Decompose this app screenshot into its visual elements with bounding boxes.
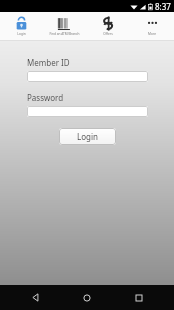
staticText: Login xyxy=(77,131,98,142)
button[interactable] xyxy=(27,106,148,117)
other: Find an ATM or Branch xyxy=(57,17,72,31)
other: Offers xyxy=(102,16,115,31)
other: Login xyxy=(15,16,28,31)
button[interactable]: Home xyxy=(70,285,104,310)
staticText: Login xyxy=(17,32,26,36)
staticText: Offers xyxy=(103,32,113,36)
button[interactable]: Find an ATM or Branch xyxy=(43,12,86,40)
button[interactable]: More xyxy=(130,12,174,40)
button[interactable]: Login xyxy=(0,12,43,40)
other: More xyxy=(145,16,160,31)
staticText: Password xyxy=(27,92,64,103)
staticText: 8:37 xyxy=(155,1,171,12)
staticText: More xyxy=(148,32,156,36)
button[interactable]: Back xyxy=(18,285,52,310)
button[interactable]: Login xyxy=(59,128,116,145)
button[interactable]: Offers xyxy=(86,12,130,40)
staticText: Find an ATM/Branch xyxy=(49,32,80,36)
staticText: Member ID xyxy=(27,57,70,68)
button[interactable] xyxy=(27,71,148,82)
button[interactable]: Recent apps xyxy=(122,285,156,310)
